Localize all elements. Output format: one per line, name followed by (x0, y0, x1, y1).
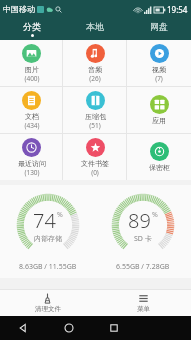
button[interactable]: 菜单 (95, 290, 191, 316)
staticText: 89 (128, 207, 151, 234)
staticText: 最近访问 (18, 159, 46, 168)
button[interactable]: Back (0, 316, 46, 340)
staticText: 应用 (152, 116, 166, 125)
staticText: 文件书签 (81, 159, 109, 168)
staticText: % (57, 210, 63, 220)
button[interactable]: Home (46, 316, 91, 340)
button[interactable]: 网盘 (127, 18, 191, 40)
button[interactable]: 89 (95, 191, 191, 272)
staticText: (400) (24, 74, 40, 83)
staticText: 网盘 (150, 21, 168, 32)
button[interactable]: 视频 (127, 40, 191, 86)
button[interactable]: 应用 (127, 87, 191, 133)
staticText: % (152, 210, 158, 220)
staticText: (0) (91, 168, 99, 177)
button[interactable]: 清理文件 (0, 290, 95, 316)
button[interactable]: 本地 (63, 18, 127, 40)
staticText: (7) (155, 74, 163, 83)
staticText: SD 卡 (134, 234, 152, 244)
button[interactable]: 文档 (0, 87, 63, 133)
staticText: 视频 (152, 65, 166, 74)
staticText: (434) (24, 121, 40, 130)
staticText: 文档 (25, 112, 39, 121)
staticText: 菜单 (137, 305, 150, 313)
staticText: 图片 (25, 65, 39, 74)
staticText: 压缩包 (85, 112, 106, 121)
button[interactable]: 74 (0, 191, 95, 272)
button[interactable]: 文件书签 (63, 134, 127, 180)
button[interactable]: 保密柜 (127, 134, 191, 180)
staticText: (130) (24, 168, 40, 177)
button[interactable]: Recent apps (91, 316, 136, 340)
staticText: 8.63GB / 11.55GB (19, 262, 77, 272)
button[interactable]: 分类 (0, 18, 63, 40)
staticText: 清理文件 (35, 305, 61, 313)
staticText: 分类 (23, 21, 41, 32)
button[interactable]: 压缩包 (63, 87, 127, 133)
staticText: 内部存储 (34, 234, 62, 243)
staticText: (26) (89, 74, 101, 83)
staticText: 中国移动 (3, 4, 35, 14)
staticText: 6.55GB / 7.28GB (116, 262, 170, 272)
staticText: 19:54 (167, 4, 188, 15)
button[interactable]: 图片 (0, 40, 63, 86)
staticText: 音频 (88, 65, 102, 74)
staticText: 保密柜 (149, 163, 170, 172)
staticText: (51) (89, 121, 101, 130)
button[interactable]: 最近访问 (0, 134, 63, 180)
staticText: 74 (33, 207, 56, 234)
staticText: 本地 (86, 21, 104, 32)
button[interactable]: 音频 (63, 40, 127, 86)
